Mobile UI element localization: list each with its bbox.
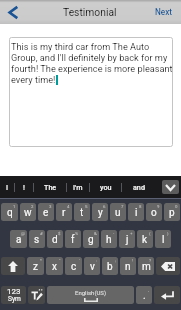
staticText: a [16,234,22,246]
staticText: ) [167,231,169,236]
button[interactable]: g [83,230,99,248]
staticText: Testimonial [63,6,117,18]
staticText: Group, and I'll definitely by back for m… [11,52,168,63]
button[interactable]: h [101,230,117,248]
staticText: # [40,231,43,236]
button[interactable]: ! [15,176,33,198]
staticText: you [100,183,112,191]
staticText: " [59,258,61,263]
staticText: I'm [73,183,83,191]
button[interactable]: e [38,203,54,221]
staticText: ? [149,258,152,263]
button[interactable]: Enter [154,286,180,304]
staticText: , [148,287,149,292]
staticText: The [44,183,57,191]
staticText: b [107,261,113,273]
button[interactable]: a [10,230,27,248]
button[interactable]: Space [47,286,134,304]
button[interactable]: q [1,203,18,221]
staticText: e [43,207,49,219]
button[interactable]: r [56,203,72,221]
staticText: 2 [31,204,34,209]
button[interactable]: and [122,176,155,198]
button[interactable]: you [90,176,121,198]
staticText: m [142,261,151,273]
button[interactable]: s [29,230,45,248]
staticText: English(US) [75,289,107,296]
staticText: % [75,231,79,236]
staticText: j [126,234,129,246]
button[interactable]: Handwriting [28,286,45,304]
staticText: Next [155,7,173,17]
staticText: g [88,234,94,246]
staticText: & [94,231,97,236]
button[interactable]: n [120,257,136,275]
button[interactable]: b [102,257,118,275]
staticText: 5 [85,204,88,209]
button[interactable]: c [65,257,82,275]
staticText: @ [21,231,25,236]
staticText: 7 [121,204,124,209]
staticText: This is my third car from The Auto [11,41,150,52]
staticText: s [34,234,40,246]
button[interactable]: Shift [1,257,25,275]
staticText: 6 [103,204,106,209]
staticText: - [113,231,115,236]
staticText: I [6,183,9,191]
staticText: 123 [7,287,21,296]
staticText: c [71,261,77,273]
staticText: fourth! The experience is more pleasant [11,63,173,74]
button[interactable]: I [0,176,14,198]
button[interactable]: v [84,257,100,275]
staticText: k [142,234,148,246]
staticText: 3 [49,204,52,209]
button[interactable]: Back [0,0,26,24]
staticText: p [169,207,175,219]
staticText: z [33,261,38,273]
button[interactable]: p [164,203,180,221]
button[interactable]: y [92,203,108,221]
button[interactable]: k [137,230,153,248]
staticText: n [125,261,131,273]
staticText: Sym [8,295,21,303]
button[interactable]: z [27,257,44,275]
staticText: 0 [175,204,178,209]
button[interactable]: i [128,203,144,221]
staticText: every time! [11,74,56,85]
button[interactable]: Next [146,0,181,24]
staticText: ( [149,231,151,236]
staticText: h [106,234,112,246]
button[interactable]: o [146,203,162,221]
staticText: * [40,258,42,263]
staticText: . [143,290,146,302]
staticText: 1 [13,204,16,209]
staticText: t [80,207,84,219]
button[interactable]: d [47,230,63,248]
button[interactable]: m [138,257,154,275]
staticText: v [90,261,95,273]
staticText: and [133,183,145,191]
button[interactable]: I'm [67,176,89,198]
button[interactable]: l [155,230,171,248]
staticText: $ [58,231,61,236]
staticText: l [162,234,165,246]
button[interactable]: u [110,203,126,221]
button[interactable]: More suggestions [162,180,179,194]
staticText: u [115,207,121,219]
button[interactable]: Backspace [156,257,180,275]
staticText: 8 [139,204,142,209]
button[interactable]: j [119,230,135,248]
button[interactable]: The [34,176,66,198]
button[interactable]: t [74,203,90,221]
staticText: + [130,231,133,236]
button[interactable]: Symbols [1,286,26,304]
staticText: ' [79,258,80,263]
button[interactable]: x [46,257,63,275]
staticText: ; [115,258,116,263]
button[interactable]: . [136,286,152,304]
staticText: 9 [157,204,160,209]
button[interactable]: f [65,230,81,248]
button[interactable]: w [20,203,36,221]
staticText: ! [132,258,134,263]
staticText: o [151,207,157,219]
